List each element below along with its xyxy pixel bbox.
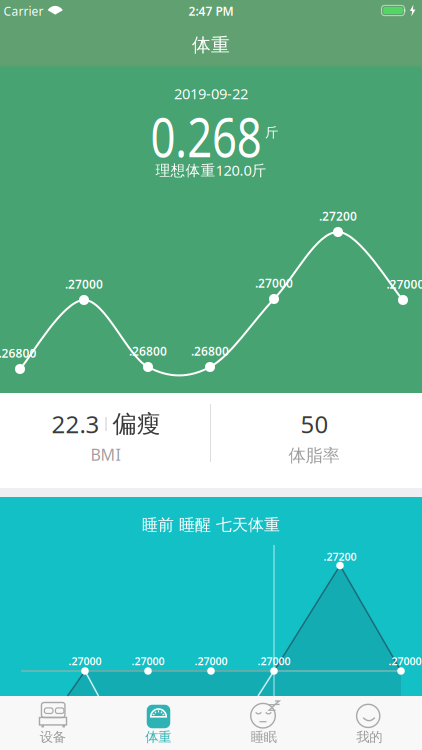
staticText: .27000 bbox=[131, 654, 164, 668]
staticText: .27200 bbox=[319, 208, 357, 224]
button[interactable]: 设备 bbox=[0, 696, 105, 750]
staticText: 我的 bbox=[356, 729, 382, 745]
staticText: 斤 bbox=[265, 124, 278, 141]
staticText: 理想体重120.0斤 bbox=[155, 160, 266, 180]
staticText: 22.3 bbox=[51, 408, 99, 440]
staticText: 设备 bbox=[40, 729, 66, 745]
staticText: .27200 bbox=[323, 549, 356, 564]
button[interactable]: 我的 bbox=[316, 696, 422, 750]
staticText: .26800 bbox=[191, 343, 229, 359]
staticText: .27000 bbox=[65, 276, 103, 292]
staticText: BMI bbox=[90, 444, 120, 465]
staticText: .27000 bbox=[257, 654, 290, 668]
staticText: .26800 bbox=[129, 343, 167, 359]
staticText: 睡眠 bbox=[251, 729, 277, 745]
staticText: .27000 bbox=[194, 654, 227, 668]
staticText: 0.268 bbox=[136, 100, 275, 172]
staticText: .27000 bbox=[68, 654, 101, 668]
staticText: 2019-09-22 bbox=[174, 84, 248, 103]
staticText: 体重 bbox=[192, 33, 230, 56]
button[interactable]: 睡眠 bbox=[211, 696, 316, 750]
staticText: .26800 bbox=[0, 345, 36, 361]
staticText: .27000 bbox=[255, 275, 293, 291]
staticText: 体脂率 bbox=[288, 445, 339, 466]
staticText: .27000 bbox=[386, 276, 422, 292]
staticText: 2:47 PM bbox=[188, 3, 233, 19]
staticText: 睡前 睡醒 七天体重 bbox=[142, 515, 280, 535]
staticText: 50 bbox=[300, 408, 328, 440]
staticText: 体重 bbox=[145, 729, 171, 745]
staticText: .27000 bbox=[388, 654, 421, 668]
staticText: Carrier bbox=[3, 3, 43, 19]
staticText: 偏瘦 bbox=[112, 409, 160, 439]
button[interactable]: 体重 bbox=[105, 696, 211, 750]
